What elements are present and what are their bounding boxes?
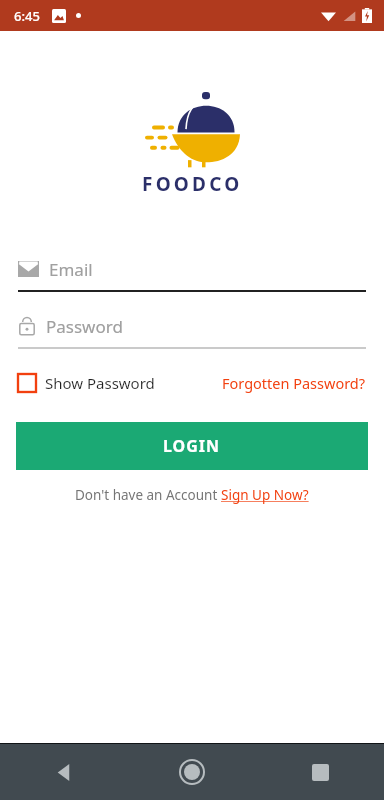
button[interactable]: Sign Up Now? <box>221 486 309 504</box>
button[interactable]: Forgotten Password? <box>222 369 366 397</box>
button[interactable]: Home <box>128 744 256 800</box>
staticText: Password <box>46 315 123 338</box>
staticText: Don't have an Account <box>75 486 221 504</box>
staticText: FOODCO <box>142 171 243 197</box>
staticText: 6:45 <box>14 7 40 25</box>
button[interactable]: Email <box>18 253 366 292</box>
staticText: Forgotten Password? <box>222 373 366 393</box>
button[interactable]: Recent apps <box>256 744 384 800</box>
staticText: Email <box>49 258 93 281</box>
button[interactable]: Password <box>18 310 366 349</box>
button[interactable]: LOGIN <box>16 422 368 470</box>
button[interactable]: Show Password <box>18 369 155 397</box>
staticText: Sign Up Now? <box>221 486 309 504</box>
staticText: LOGIN <box>163 435 221 457</box>
staticText: Show Password <box>45 373 155 393</box>
button[interactable]: Back <box>0 744 128 800</box>
